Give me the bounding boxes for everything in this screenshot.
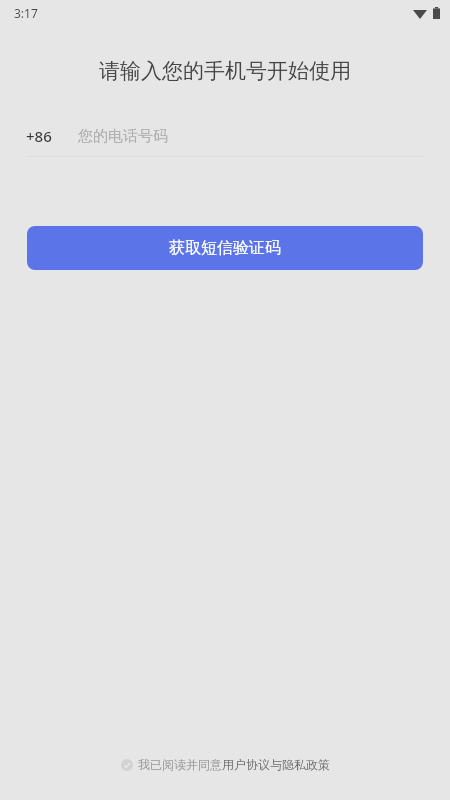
staticText: 请输入您的手机号开始使用 [0,58,450,84]
staticText: 您的电话号码 [78,127,168,146]
staticText: 获取短信验证码 [169,238,281,258]
staticText: 用户协议与隐私政策 [222,757,330,772]
staticText: +86 [26,126,52,146]
button[interactable]: +86 [26,116,424,156]
other: Agree checkbox [121,759,133,771]
button[interactable]: 获取短信验证码 [27,226,423,270]
staticText: 我已阅读并同意 [138,757,222,772]
staticText: 3:17 [14,5,38,21]
button[interactable]: Agree checkbox [121,757,330,772]
